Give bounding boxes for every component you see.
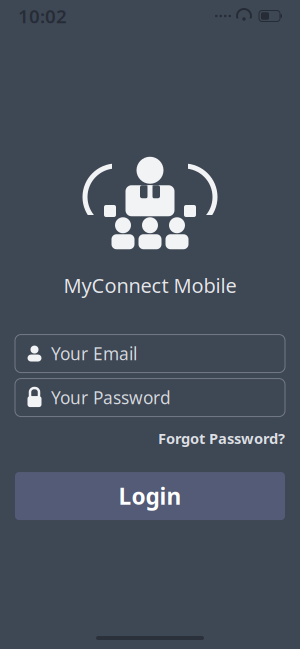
staticText: Forgot Password? (158, 429, 285, 448)
staticText: Your Password (51, 386, 171, 409)
button[interactable]: Forgot Password? (158, 425, 285, 452)
staticText: Login (118, 481, 181, 511)
staticText: MyConnect Mobile (63, 272, 236, 299)
button[interactable]: Login (15, 472, 285, 520)
button[interactable]: Your Email (15, 335, 285, 373)
staticText: Your Email (51, 342, 137, 365)
staticText: 10:02 (18, 4, 67, 28)
button[interactable]: Your Password (15, 379, 285, 417)
